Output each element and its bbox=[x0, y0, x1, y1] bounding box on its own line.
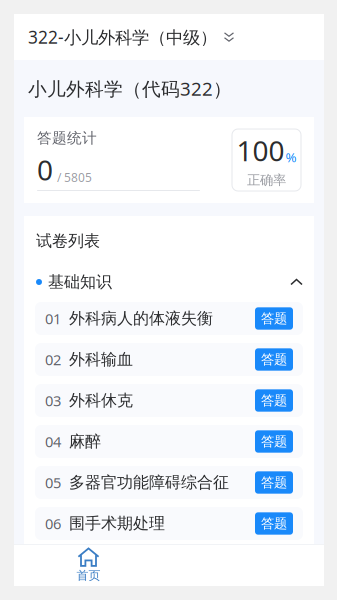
staticText: / 5805 bbox=[57, 169, 92, 185]
staticText: 基础知识 bbox=[48, 272, 112, 292]
staticText: 外科休克 bbox=[69, 391, 133, 410]
button[interactable]: 06 bbox=[24, 503, 314, 544]
button[interactable]: 01 bbox=[24, 298, 314, 339]
staticText: 03 bbox=[45, 391, 61, 410]
staticText: 麻醉 bbox=[69, 432, 101, 451]
staticText: 答题统计 bbox=[37, 129, 97, 147]
staticText: 试卷列表 bbox=[36, 231, 100, 251]
staticText: 首页 bbox=[76, 568, 100, 583]
staticText: 答题 bbox=[261, 433, 287, 450]
staticText: 0 bbox=[37, 151, 53, 188]
staticText: 答题 bbox=[261, 351, 287, 368]
staticText: 多器官功能障碍综合征 bbox=[69, 473, 229, 492]
staticText: 外科病人的体液失衡 bbox=[69, 309, 213, 328]
staticText: 01 bbox=[45, 309, 61, 328]
button[interactable]: 05 bbox=[24, 462, 314, 503]
staticText: 02 bbox=[45, 350, 61, 369]
button[interactable]: 基础知识 bbox=[24, 266, 314, 298]
staticText: 外科输血 bbox=[69, 350, 133, 369]
staticText: 答题 bbox=[261, 474, 287, 491]
button[interactable]: 04 bbox=[24, 421, 314, 462]
button[interactable]: 02 bbox=[24, 339, 314, 380]
staticText: 答题 bbox=[261, 310, 287, 327]
button[interactable]: 03 bbox=[24, 380, 314, 421]
staticText: 小儿外科学（代码322） bbox=[28, 76, 232, 101]
staticText: 04 bbox=[45, 432, 61, 451]
staticText: 322-小儿外科学（中级） bbox=[28, 25, 217, 48]
staticText: 答题 bbox=[261, 392, 287, 409]
staticText: 05 bbox=[45, 473, 61, 492]
staticText: 正确率 bbox=[247, 172, 286, 188]
staticText: 100 bbox=[236, 132, 284, 169]
staticText: 围手术期处理 bbox=[69, 514, 165, 533]
button[interactable]: 首页 bbox=[14, 544, 163, 586]
staticText: % bbox=[285, 148, 296, 166]
staticText: 06 bbox=[45, 514, 61, 533]
staticText: 答题 bbox=[261, 515, 287, 532]
